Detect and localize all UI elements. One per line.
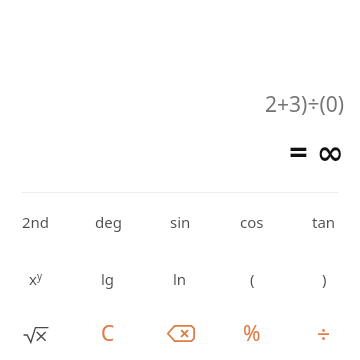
- button[interactable]: cos: [216, 194, 288, 250]
- staticText: 2+3)÷(0): [0, 90, 344, 119]
- button[interactable]: ÷: [288, 307, 360, 360]
- staticText: %: [243, 319, 261, 348]
- button[interactable]: sin: [144, 194, 216, 250]
- staticText: deg: [95, 212, 122, 232]
- staticText: tan: [312, 212, 336, 232]
- staticText: sin: [170, 212, 191, 232]
- button[interactable]: %: [216, 307, 288, 360]
- button[interactable]: C: [72, 307, 144, 360]
- button[interactable]: xy: [0, 251, 72, 307]
- staticText: cos: [240, 212, 264, 232]
- button[interactable]: Backspace: [144, 307, 216, 360]
- button[interactable]: ln: [144, 251, 216, 307]
- staticText: ln: [173, 269, 187, 289]
- staticText: ): [322, 269, 327, 289]
- staticText: ÷: [317, 318, 331, 349]
- button[interactable]: tan: [288, 194, 360, 250]
- staticText: C: [101, 319, 115, 348]
- button[interactable]: 2nd: [0, 194, 72, 250]
- button[interactable]: Square root: [0, 307, 72, 360]
- button[interactable]: lg: [72, 251, 144, 307]
- staticText: = ∞: [0, 129, 344, 174]
- staticText: (: [250, 269, 255, 289]
- staticText: lg: [101, 269, 115, 289]
- button[interactable]: deg: [72, 194, 144, 250]
- staticText: xy: [29, 269, 43, 289]
- button[interactable]: ): [288, 251, 360, 307]
- staticText: 2nd: [22, 212, 50, 232]
- button[interactable]: (: [216, 251, 288, 307]
